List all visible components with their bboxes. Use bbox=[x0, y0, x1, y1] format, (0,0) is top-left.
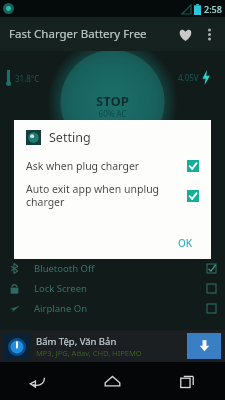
staticText: Bluetooth Off bbox=[34, 262, 95, 275]
staticText: STOP bbox=[0, 92, 225, 110]
button[interactable]: Airplane On bbox=[0, 298, 225, 318]
staticText: Airplane On bbox=[34, 302, 88, 315]
staticText: Lock Screen bbox=[34, 282, 87, 295]
button[interactable]: OK bbox=[172, 233, 199, 253]
button[interactable]: Bấm Tệp, Văn Bản bbox=[0, 330, 225, 362]
staticText: Auto exit app when unplug charger bbox=[26, 182, 181, 209]
button[interactable]: Auto exit app when unplug charger bbox=[14, 182, 211, 209]
button[interactable]: Recent apps bbox=[150, 362, 225, 400]
button[interactable]: More options bbox=[197, 22, 221, 46]
staticText: 31.8°C bbox=[15, 73, 40, 84]
staticText: Ask when plug charger bbox=[26, 159, 181, 173]
staticText: 2:58 bbox=[204, 3, 222, 15]
button[interactable]: Back bbox=[0, 362, 75, 400]
staticText: OK bbox=[178, 236, 193, 250]
button[interactable]: Download bbox=[187, 333, 221, 359]
button[interactable]: Favorite bbox=[173, 22, 197, 46]
staticText: Fast Charger Battery Free bbox=[9, 26, 147, 42]
staticText: 4.05V bbox=[178, 72, 199, 83]
staticText: MP3, JPG, Adav, CHD, HIPEMO bbox=[36, 348, 142, 358]
staticText: 60% AC bbox=[0, 108, 225, 119]
staticText: Setting bbox=[49, 129, 91, 146]
button[interactable]: Lock Screen bbox=[0, 278, 225, 298]
staticText: Bấm Tệp, Văn Bản bbox=[36, 335, 117, 348]
button[interactable]: Bluetooth Off bbox=[0, 258, 225, 278]
button[interactable]: Home bbox=[75, 362, 150, 400]
button[interactable]: Ask when plug charger bbox=[14, 159, 211, 173]
